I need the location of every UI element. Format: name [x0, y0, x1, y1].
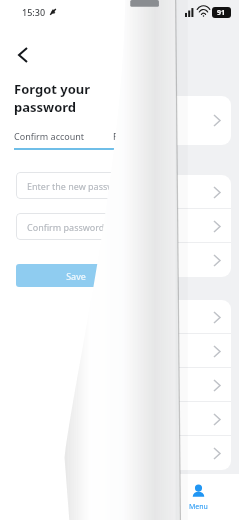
button[interactable]: Confirm account — [14, 130, 85, 142]
button[interactable]: Confirm password — [16, 213, 139, 240]
staticText: Forgot your password — [14, 80, 143, 116]
button[interactable]: Report — [75, 474, 157, 520]
staticText: 91 — [217, 8, 226, 18]
button[interactable]: Enter the new password — [16, 172, 139, 199]
button[interactable]: Menu — [157, 474, 239, 520]
button[interactable] — [8, 300, 231, 334]
staticText: Menu — [189, 502, 208, 512]
button[interactable] — [8, 209, 231, 243]
staticText: Confirm password — [27, 221, 105, 233]
button[interactable] — [8, 436, 231, 470]
button[interactable] — [8, 175, 231, 209]
button[interactable]: Back — [8, 40, 38, 70]
button[interactable] — [8, 334, 231, 368]
button[interactable] — [8, 96, 231, 145]
button[interactable] — [8, 368, 231, 402]
staticText: Save — [66, 270, 86, 282]
button[interactable]: Reset — [113, 130, 137, 142]
button[interactable] — [8, 243, 231, 277]
staticText: Enter the new password — [27, 180, 129, 192]
button[interactable]: Save — [16, 264, 135, 287]
button[interactable] — [8, 402, 231, 436]
staticText: 15:30 — [22, 6, 46, 18]
